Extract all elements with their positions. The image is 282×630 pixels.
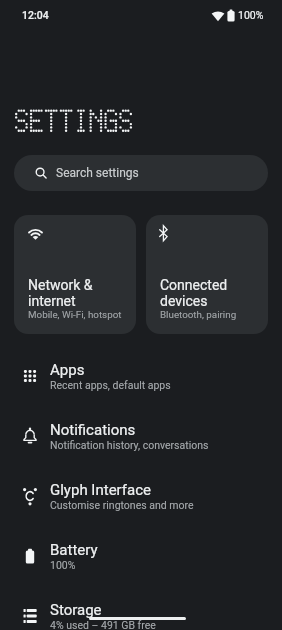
button[interactable]: Battery [0,526,282,586]
staticText: Bluetooth, pairing [160,309,237,320]
staticText: Mobile, Wi-Fi, hotspot [28,309,122,320]
staticText: Customise ringtones and more [50,499,194,511]
staticText: Notifications [50,421,136,439]
button[interactable]: Glyph Interface [0,466,282,526]
staticText: Connected [160,277,228,293]
button[interactable]: Notifications [0,406,282,466]
staticText: Glyph Interface [50,481,151,499]
button[interactable]: Network & [14,215,136,334]
staticText: Storage [50,601,102,619]
staticText: Recent apps, default apps [50,379,171,391]
staticText: Network & [28,277,93,293]
staticText: 100% [238,9,264,21]
staticText: 12:04 [22,9,49,21]
staticText: 4% used – 491 GB free [50,619,156,630]
staticText: Notification history, conversations [50,439,209,451]
staticText: devices [160,293,208,309]
button[interactable]: Apps [0,346,282,406]
button[interactable]: Connected [146,215,268,334]
staticText: Search settings [56,166,139,180]
button[interactable]: Search settings [14,155,268,191]
staticText: Battery [50,541,98,559]
staticText: 100% [50,559,76,571]
button[interactable]: Storage [0,586,282,630]
staticText: Apps [50,361,85,379]
staticText: internet [28,293,76,309]
